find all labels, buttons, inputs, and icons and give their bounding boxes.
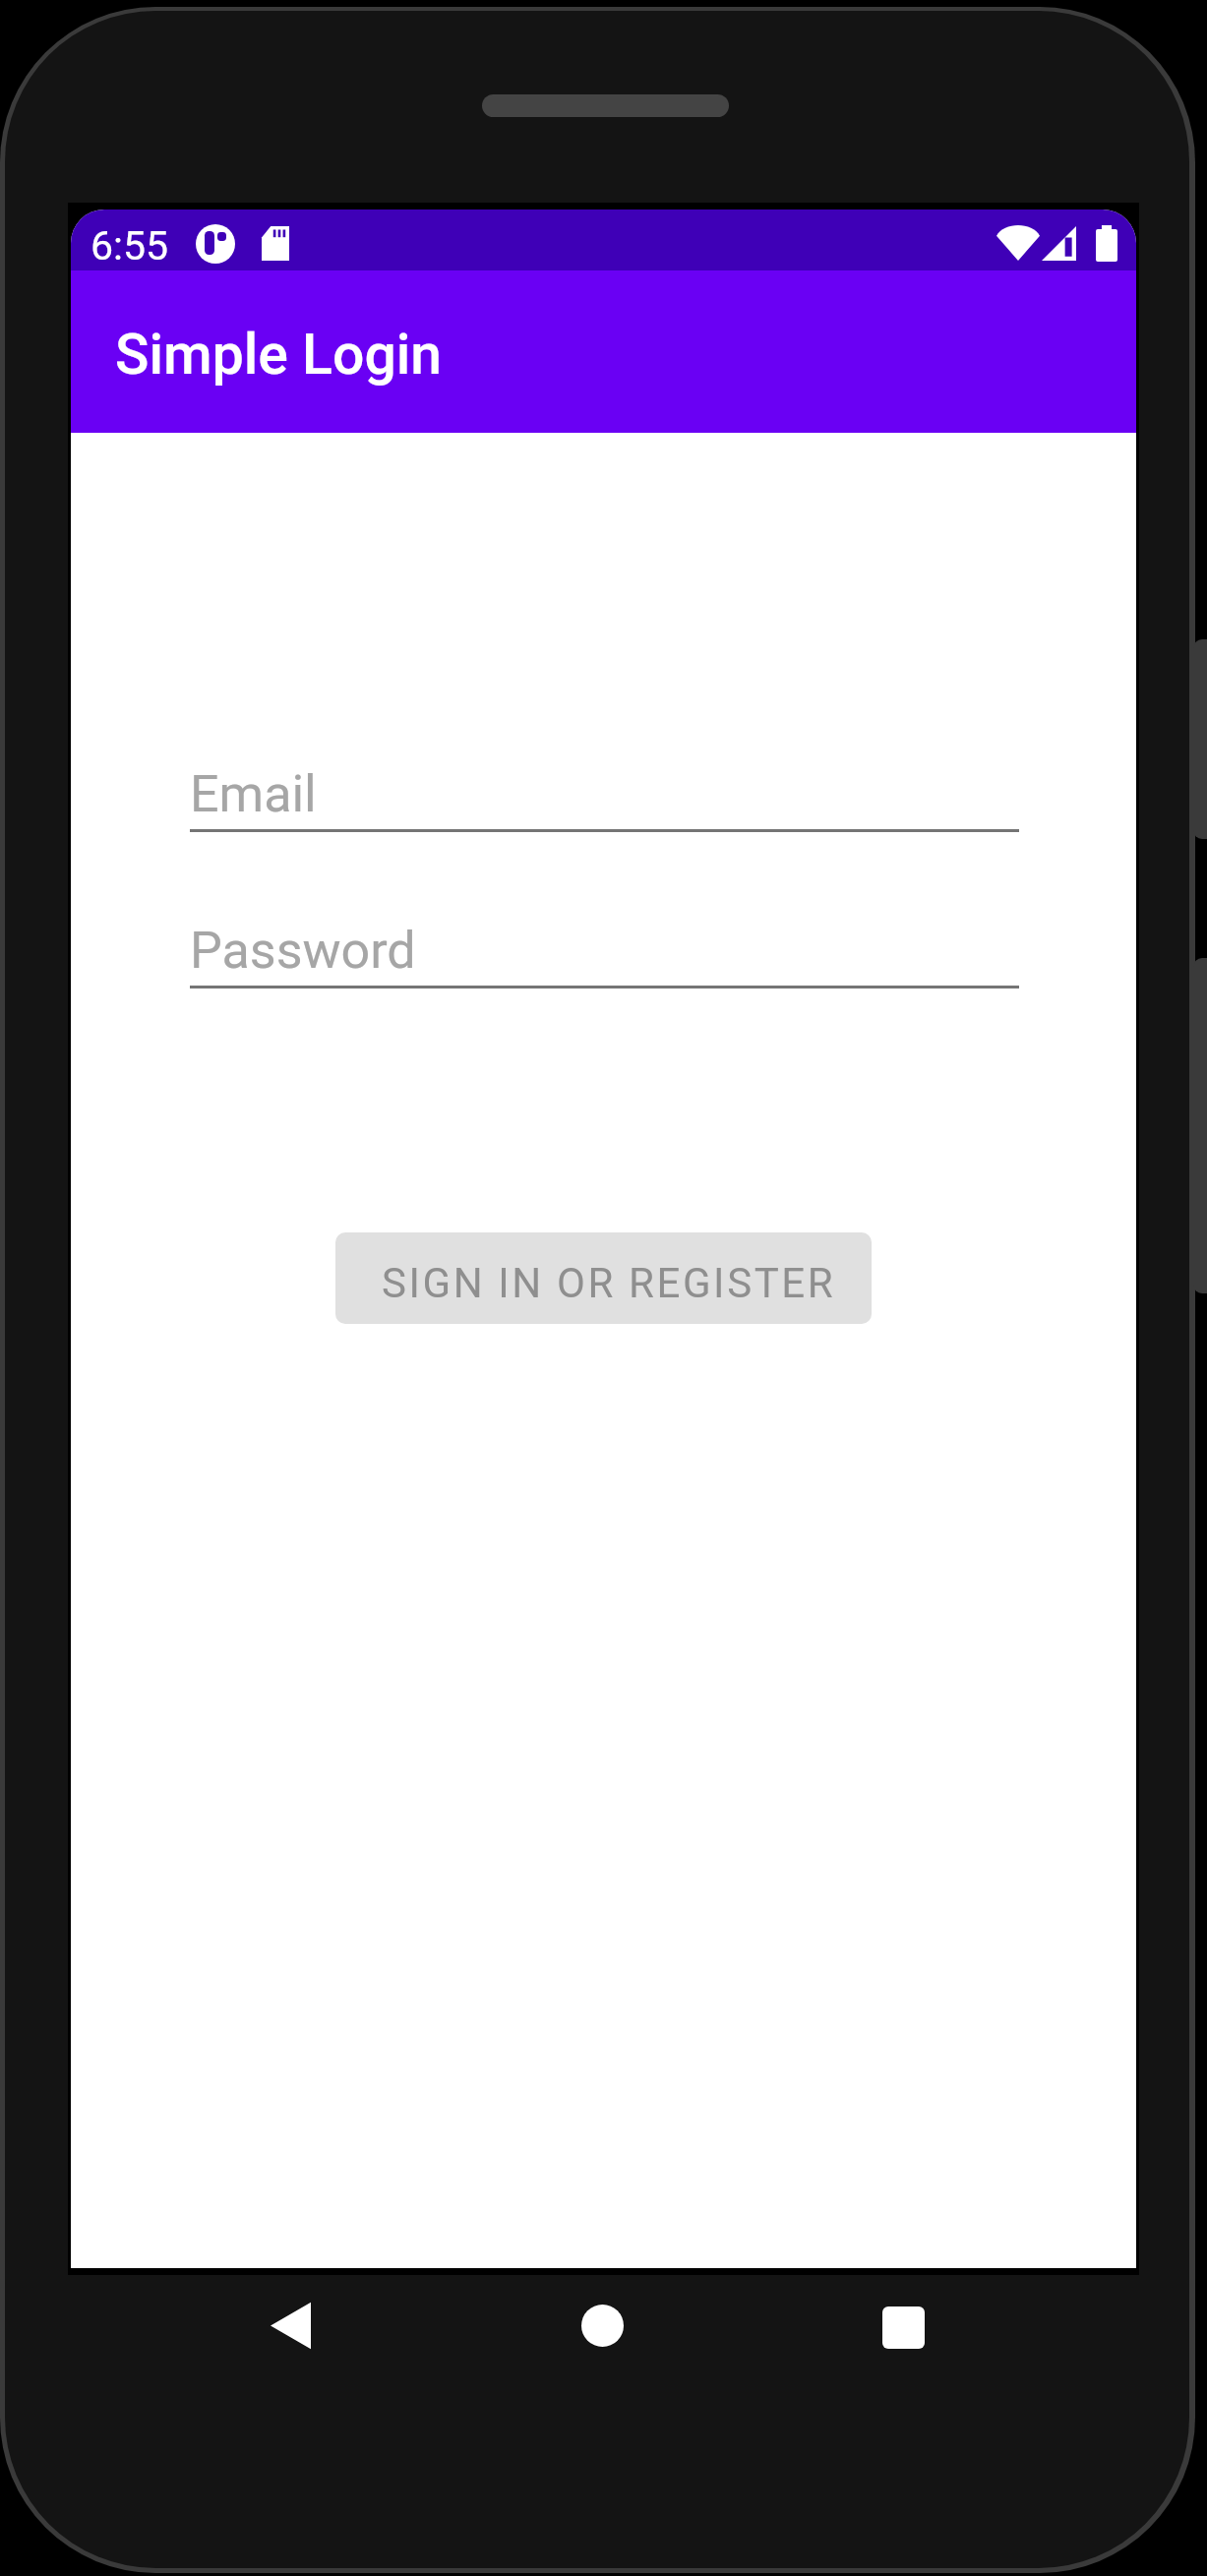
button[interactable]: Back [252, 2286, 331, 2365]
button[interactable]: Home [563, 2286, 641, 2365]
button[interactable]: Recent apps [864, 2288, 942, 2366]
button[interactable]: SIGN IN OR REGISTER [335, 1232, 872, 1324]
button[interactable]: Password [190, 915, 1019, 986]
staticText: Password [190, 921, 416, 981]
staticText: 6:55 [91, 222, 169, 270]
staticText: Simple Login [115, 322, 443, 388]
button[interactable]: Email [190, 758, 1019, 829]
staticText: Email [190, 764, 317, 824]
staticText: SIGN IN OR REGISTER [382, 1259, 836, 1307]
